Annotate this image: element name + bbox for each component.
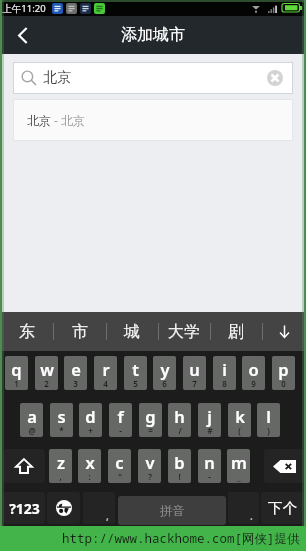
button[interactable]: Shift [3, 449, 45, 483]
button[interactable]: b [168, 449, 191, 483]
staticText: : [88, 471, 91, 482]
button[interactable]: p [272, 356, 295, 390]
button[interactable]: 北京 [13, 62, 293, 94]
staticText: ! [178, 471, 181, 482]
button[interactable]: 剧 [210, 312, 262, 351]
staticText: r [102, 358, 110, 380]
staticText: 北京 [27, 113, 51, 128]
staticText: ?123 [9, 499, 40, 518]
staticText: http://www.hackhome.com[网侠]提供 [62, 530, 300, 547]
staticText: / [178, 425, 182, 436]
staticText: 7 [192, 378, 197, 389]
staticText: 3 [73, 378, 78, 389]
button[interactable]: More candidates [262, 312, 306, 351]
button[interactable]: j [198, 403, 221, 437]
button[interactable]: o [242, 356, 265, 390]
staticText: i [222, 358, 227, 380]
button[interactable]: Backspace [264, 449, 304, 483]
staticText: 北京 [43, 69, 71, 87]
staticText: y [160, 358, 170, 380]
button[interactable]: , [83, 492, 115, 524]
staticText: " [118, 471, 122, 482]
staticText: , [59, 471, 62, 482]
staticText: d [85, 405, 96, 427]
staticText: c [115, 451, 124, 473]
staticText: 9 [251, 378, 256, 389]
staticText: a [27, 405, 37, 427]
staticText: l [266, 405, 271, 427]
staticText: h [174, 405, 185, 427]
button[interactable]: h [168, 403, 191, 437]
button[interactable]: Switch input language [47, 492, 80, 524]
staticText: f [117, 405, 124, 427]
staticText: ? [148, 471, 152, 482]
staticText: 市 [72, 322, 88, 342]
staticText: - 北京 [54, 112, 85, 128]
staticText: b [174, 451, 185, 473]
staticText: g [145, 405, 156, 427]
button[interactable]: i [213, 356, 236, 390]
button[interactable]: u [183, 356, 206, 390]
staticText: 东 [19, 322, 35, 342]
button[interactable]: l [257, 403, 280, 437]
staticText: 6 [162, 378, 167, 389]
staticText: = [148, 425, 153, 436]
staticText: * [59, 425, 64, 436]
button[interactable]: m [227, 449, 250, 483]
button[interactable]: n [198, 449, 221, 483]
staticText: j [207, 405, 212, 427]
button[interactable]: z [49, 449, 72, 483]
staticText: o [248, 358, 259, 380]
staticText: k [235, 405, 245, 427]
staticText: 1 [14, 378, 19, 389]
staticText: _ [237, 471, 241, 482]
button[interactable]: Clear text [266, 69, 284, 87]
staticText: e [71, 358, 81, 380]
staticText: 4 [103, 378, 108, 389]
staticText: v [145, 451, 155, 473]
button[interactable]: v [138, 449, 161, 483]
button[interactable]: x [78, 449, 101, 483]
staticText: 5 [133, 378, 138, 389]
staticText: @ [28, 425, 36, 436]
button[interactable]: 东 [0, 312, 53, 351]
button[interactable]: w [35, 356, 58, 390]
button[interactable]: c [108, 449, 131, 483]
staticText: ( [238, 425, 241, 436]
staticText: + [88, 425, 93, 436]
staticText: , [106, 509, 109, 523]
button[interactable]: a [20, 403, 43, 437]
button[interactable]: k [228, 403, 251, 437]
staticText: 剧 [228, 322, 244, 342]
staticText: ) [267, 425, 270, 436]
staticText: # [207, 425, 213, 436]
staticText: q [11, 358, 22, 380]
button[interactable]: . [228, 492, 259, 524]
button[interactable]: 拼音 [118, 496, 226, 525]
button[interactable]: 下个 [261, 492, 303, 524]
button[interactable]: y [153, 356, 176, 390]
button[interactable]: s [50, 403, 73, 437]
staticText: 8 [222, 378, 227, 389]
button[interactable]: d [79, 403, 102, 437]
staticText: p [278, 358, 289, 380]
button[interactable]: g [139, 403, 162, 437]
button[interactable]: e [64, 356, 87, 390]
button[interactable]: 大学 [158, 312, 210, 351]
staticText: 2 [44, 378, 49, 389]
staticText: 上午11:20 [2, 2, 46, 15]
staticText: . [250, 509, 253, 523]
staticText: t [132, 358, 139, 380]
button[interactable]: Back [0, 16, 44, 54]
button[interactable]: 北京 [13, 99, 293, 141]
staticText: 大学 [168, 322, 200, 342]
staticText: w [40, 358, 54, 380]
button[interactable]: f [109, 403, 132, 437]
button[interactable]: ?123 [3, 492, 45, 524]
button[interactable]: 城 [106, 312, 158, 351]
button[interactable]: 市 [53, 312, 106, 351]
button[interactable]: t [124, 356, 147, 390]
button[interactable]: q [5, 356, 28, 390]
staticText: - [119, 425, 122, 436]
button[interactable]: r [94, 356, 117, 390]
